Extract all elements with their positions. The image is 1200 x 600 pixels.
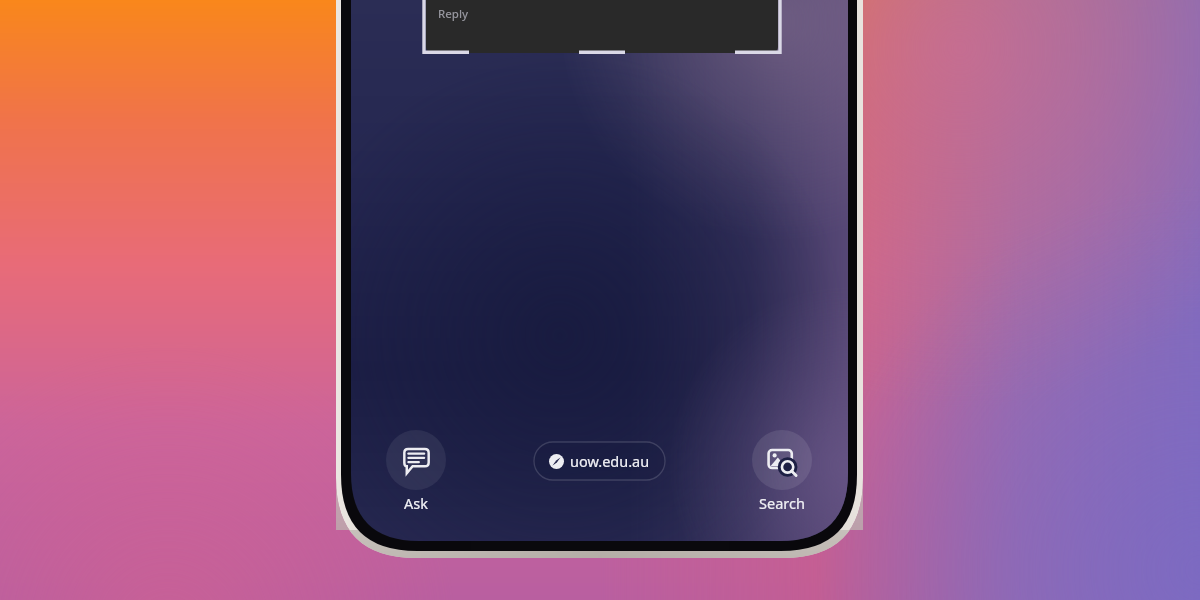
button[interactable]: Ask (386, 430, 446, 513)
staticText: Ask (404, 493, 428, 513)
button[interactable]: uow.edu.au (534, 442, 665, 480)
staticText: Reply (438, 6, 469, 22)
button[interactable]: Search (752, 430, 812, 513)
staticText: Search (759, 493, 805, 513)
button[interactable]: Reply (438, 6, 469, 22)
staticText: uow.edu.au (570, 451, 650, 471)
